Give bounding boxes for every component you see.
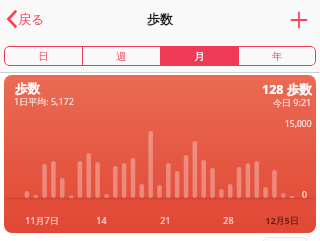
staticText: 月	[194, 50, 205, 63]
staticText: 28	[223, 214, 234, 226]
staticText: 年	[272, 50, 283, 63]
staticText: 11月7日	[25, 214, 59, 226]
staticText: 戻る	[18, 11, 45, 27]
staticText: 今日 9:21	[273, 96, 312, 108]
staticText: 歩数	[15, 81, 40, 97]
staticText: 21	[160, 214, 171, 226]
staticText: 歩数	[147, 11, 173, 27]
button[interactable]: 週	[83, 46, 160, 66]
staticText: 128 歩数	[262, 81, 312, 98]
button[interactable]	[290, 11, 308, 29]
staticText: 0	[302, 189, 307, 201]
staticText: 14	[96, 214, 107, 226]
button[interactable]: 年	[239, 46, 316, 66]
staticText: 1日平均: 5,172	[14, 95, 74, 107]
staticText: 日	[38, 50, 49, 63]
staticText: 12月5日	[265, 214, 299, 226]
button[interactable]: 戻る	[6, 8, 45, 30]
staticText: 週	[116, 50, 127, 63]
button[interactable]: 月	[161, 46, 238, 66]
button[interactable]: 日	[4, 46, 82, 66]
staticText: 15,000	[285, 118, 312, 130]
